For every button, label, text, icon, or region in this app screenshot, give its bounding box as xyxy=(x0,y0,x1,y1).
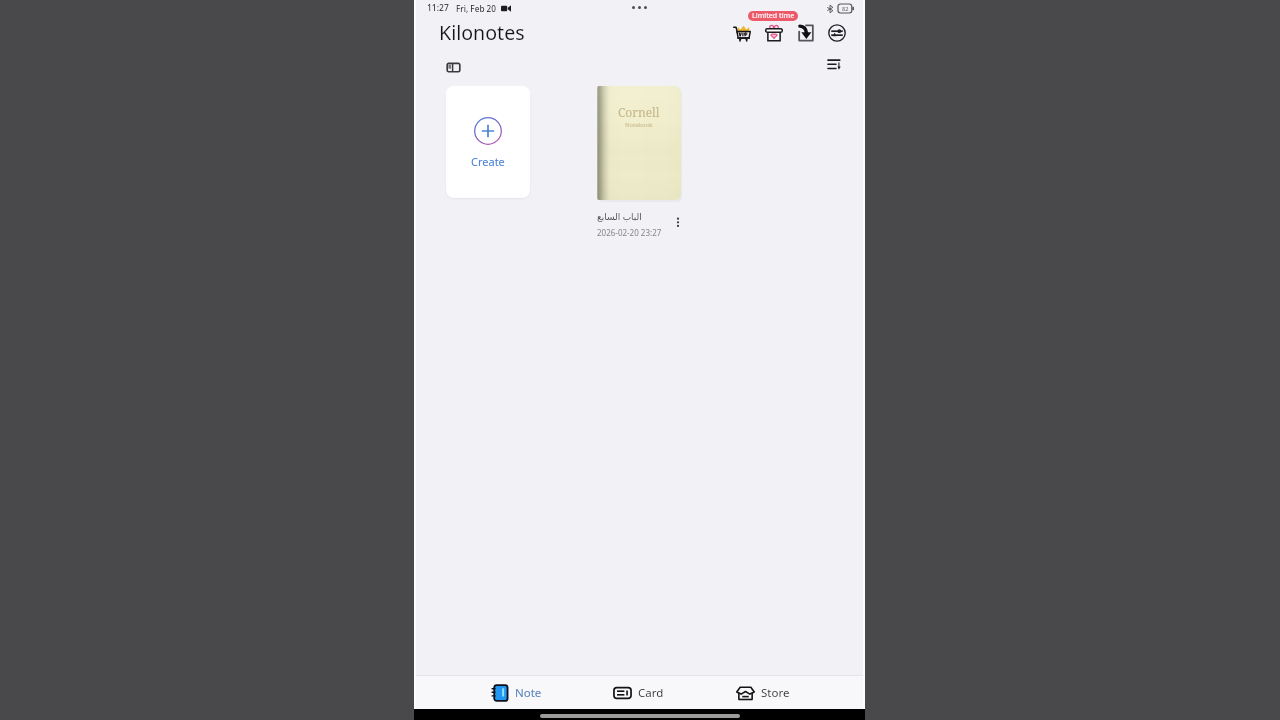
staticText: الباب السابع xyxy=(597,210,642,222)
button[interactable]: Sort xyxy=(827,56,843,72)
staticText: Note xyxy=(515,685,542,701)
staticText: 82 xyxy=(842,5,849,12)
button[interactable]: VIP subscription xyxy=(733,24,751,42)
staticText: Store xyxy=(761,685,790,701)
button[interactable]: Create xyxy=(446,86,530,198)
staticText: Notebook xyxy=(625,121,653,129)
staticText: 2026-02-20 23:27 xyxy=(597,227,662,238)
staticText: Kilonotes xyxy=(439,19,525,46)
staticText: Limited time xyxy=(752,11,795,21)
staticText: Cornell xyxy=(618,104,660,120)
staticText: Card xyxy=(638,685,664,701)
staticText: Create xyxy=(471,154,505,169)
button[interactable]: Store xyxy=(730,676,796,709)
button[interactable]: Note xyxy=(483,676,549,709)
button[interactable]: Settings xyxy=(828,24,846,42)
button[interactable]: Gifts xyxy=(765,24,783,42)
button[interactable]: Import xyxy=(797,24,815,42)
staticText: Fri, Feb 20 xyxy=(456,3,496,14)
button[interactable]: Card xyxy=(605,676,671,709)
button[interactable]: More options xyxy=(671,215,685,229)
staticText: 11:27 xyxy=(427,2,449,14)
button[interactable]: Toggle sidebar xyxy=(446,60,461,75)
button[interactable]: Cornell xyxy=(597,86,681,238)
